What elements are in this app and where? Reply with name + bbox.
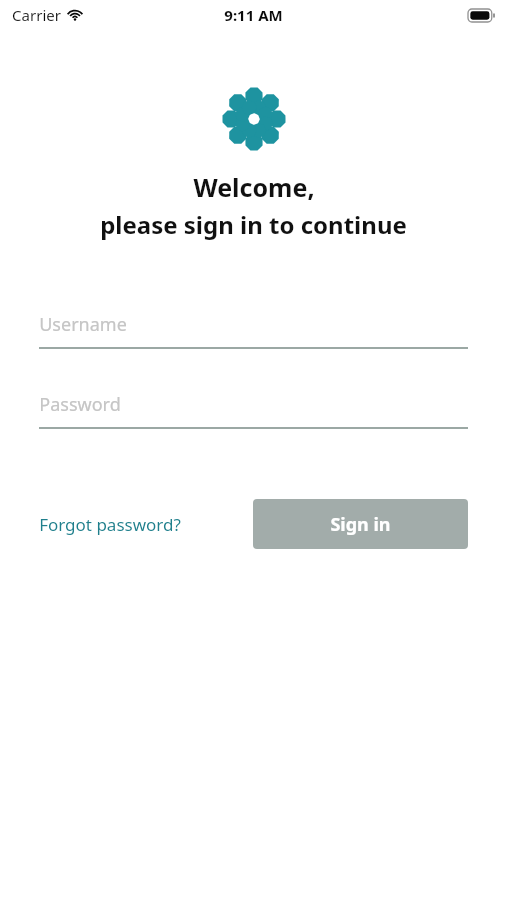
staticText: Carrier <box>12 5 61 25</box>
staticText: Welcome, <box>193 170 315 204</box>
staticText: Forgot password? <box>39 513 181 536</box>
button[interactable]: Password <box>39 389 468 429</box>
staticText: 9:11 AM <box>224 5 283 25</box>
button[interactable]: Sign in <box>253 499 468 549</box>
button[interactable]: Username <box>39 309 468 349</box>
staticText: Password <box>39 392 121 417</box>
staticText: Username <box>39 312 127 337</box>
staticText: Sign in <box>330 512 391 537</box>
other: Wi-Fi signal <box>67 7 83 23</box>
button[interactable]: Forgot password? <box>39 507 181 542</box>
staticText: please sign in to continue <box>100 208 407 241</box>
other: Battery full <box>468 9 495 22</box>
